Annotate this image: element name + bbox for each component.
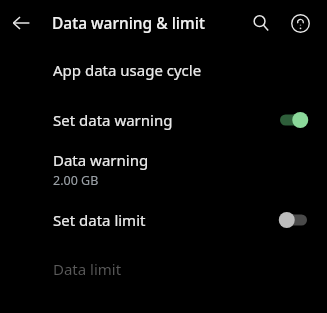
- staticText: Set data limit: [53, 210, 146, 230]
- staticText: 2.00 GB: [53, 172, 99, 189]
- staticText: App data usage cycle: [53, 60, 202, 80]
- button[interactable]: Data limit: [0, 244, 327, 294]
- button[interactable]: Off: [273, 207, 313, 233]
- button[interactable]: App data usage cycle: [0, 45, 327, 95]
- button[interactable]: Back: [4, 6, 38, 40]
- button[interactable]: Help: [283, 6, 317, 40]
- button[interactable]: Set data warning: [0, 95, 327, 144]
- staticText: Data warning: [53, 150, 149, 170]
- staticText: Data limit: [53, 259, 122, 279]
- button[interactable]: Set data limit: [0, 195, 327, 244]
- button[interactable]: Data warning: [0, 144, 327, 195]
- staticText: Data warning & limit: [52, 12, 205, 33]
- button[interactable]: On: [273, 107, 313, 133]
- button[interactable]: Search: [244, 6, 278, 40]
- staticText: Set data warning: [53, 110, 173, 130]
